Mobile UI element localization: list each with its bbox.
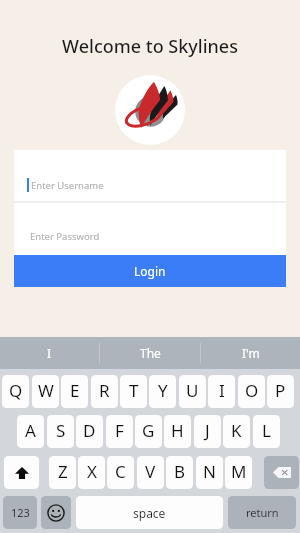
staticText: Welcome to Skylines [0, 34, 300, 59]
button[interactable]: Backspace [264, 456, 299, 489]
button[interactable]: O [238, 375, 265, 408]
staticText: P [275, 379, 286, 402]
button[interactable]: V [137, 456, 164, 489]
staticText: U [186, 379, 199, 402]
staticText: H [171, 419, 184, 442]
button[interactable]: I'm [201, 337, 300, 369]
staticText: Q [9, 379, 23, 402]
staticText: T [129, 379, 139, 402]
staticText: I'm [242, 345, 260, 361]
staticText: F [115, 419, 124, 442]
staticText: K [231, 419, 242, 442]
button[interactable]: Q [2, 375, 29, 408]
button[interactable]: space [76, 496, 223, 529]
button[interactable]: E [61, 375, 88, 408]
button[interactable]: A [17, 415, 44, 448]
button[interactable]: 123 [3, 496, 37, 529]
staticText: Login [134, 263, 166, 279]
button[interactable]: J [194, 415, 221, 448]
staticText: O [245, 379, 259, 402]
staticText: 123 [11, 505, 30, 520]
staticText: Y [158, 379, 168, 402]
staticText: I [219, 379, 225, 402]
button[interactable]: N [196, 456, 223, 489]
button[interactable]: Emoji [41, 496, 71, 529]
staticText: S [56, 419, 66, 442]
staticText: N [203, 460, 216, 483]
button[interactable]: Z [49, 456, 76, 489]
button[interactable]: G [135, 415, 162, 448]
staticText: X [87, 460, 97, 483]
staticText: Enter Password [30, 230, 100, 243]
button[interactable]: Shift [4, 456, 39, 489]
button[interactable]: R [91, 375, 118, 408]
button[interactable]: Login [14, 255, 286, 287]
button[interactable]: Y [149, 375, 176, 408]
button[interactable]: I [0, 337, 99, 369]
button[interactable]: X [78, 456, 105, 489]
button[interactable]: W [32, 375, 59, 408]
staticText: D [83, 419, 96, 442]
button[interactable]: Enter Password [14, 203, 286, 255]
staticText: V [145, 460, 156, 483]
button[interactable]: D [76, 415, 103, 448]
staticText: E [70, 379, 80, 402]
button[interactable]: B [166, 456, 193, 489]
staticText: The [140, 345, 161, 361]
staticText: Z [58, 460, 68, 483]
button[interactable]: C [107, 456, 134, 489]
staticText: space [133, 505, 166, 521]
button[interactable]: The [100, 337, 200, 369]
button[interactable]: S [47, 415, 74, 448]
staticText: G [142, 419, 155, 442]
staticText: J [205, 419, 210, 442]
staticText: L [262, 419, 271, 442]
button[interactable]: F [106, 415, 133, 448]
button[interactable]: U [179, 375, 206, 408]
button[interactable]: K [223, 415, 250, 448]
staticText: W [38, 379, 54, 402]
button[interactable]: T [120, 375, 147, 408]
staticText: I [47, 345, 52, 361]
staticText: M [231, 460, 247, 483]
button[interactable]: M [225, 456, 252, 489]
staticText: A [25, 419, 36, 442]
button[interactable]: return [228, 496, 296, 529]
staticText: R [99, 379, 110, 402]
staticText: Enter Username [31, 179, 104, 192]
button[interactable]: L [253, 415, 280, 448]
button[interactable]: I [208, 375, 235, 408]
button[interactable]: P [267, 375, 294, 408]
button[interactable]: H [164, 415, 191, 448]
staticText: B [174, 460, 186, 483]
staticText: return [246, 505, 279, 520]
button[interactable]: Enter Username [14, 150, 286, 201]
staticText: C [115, 460, 126, 483]
